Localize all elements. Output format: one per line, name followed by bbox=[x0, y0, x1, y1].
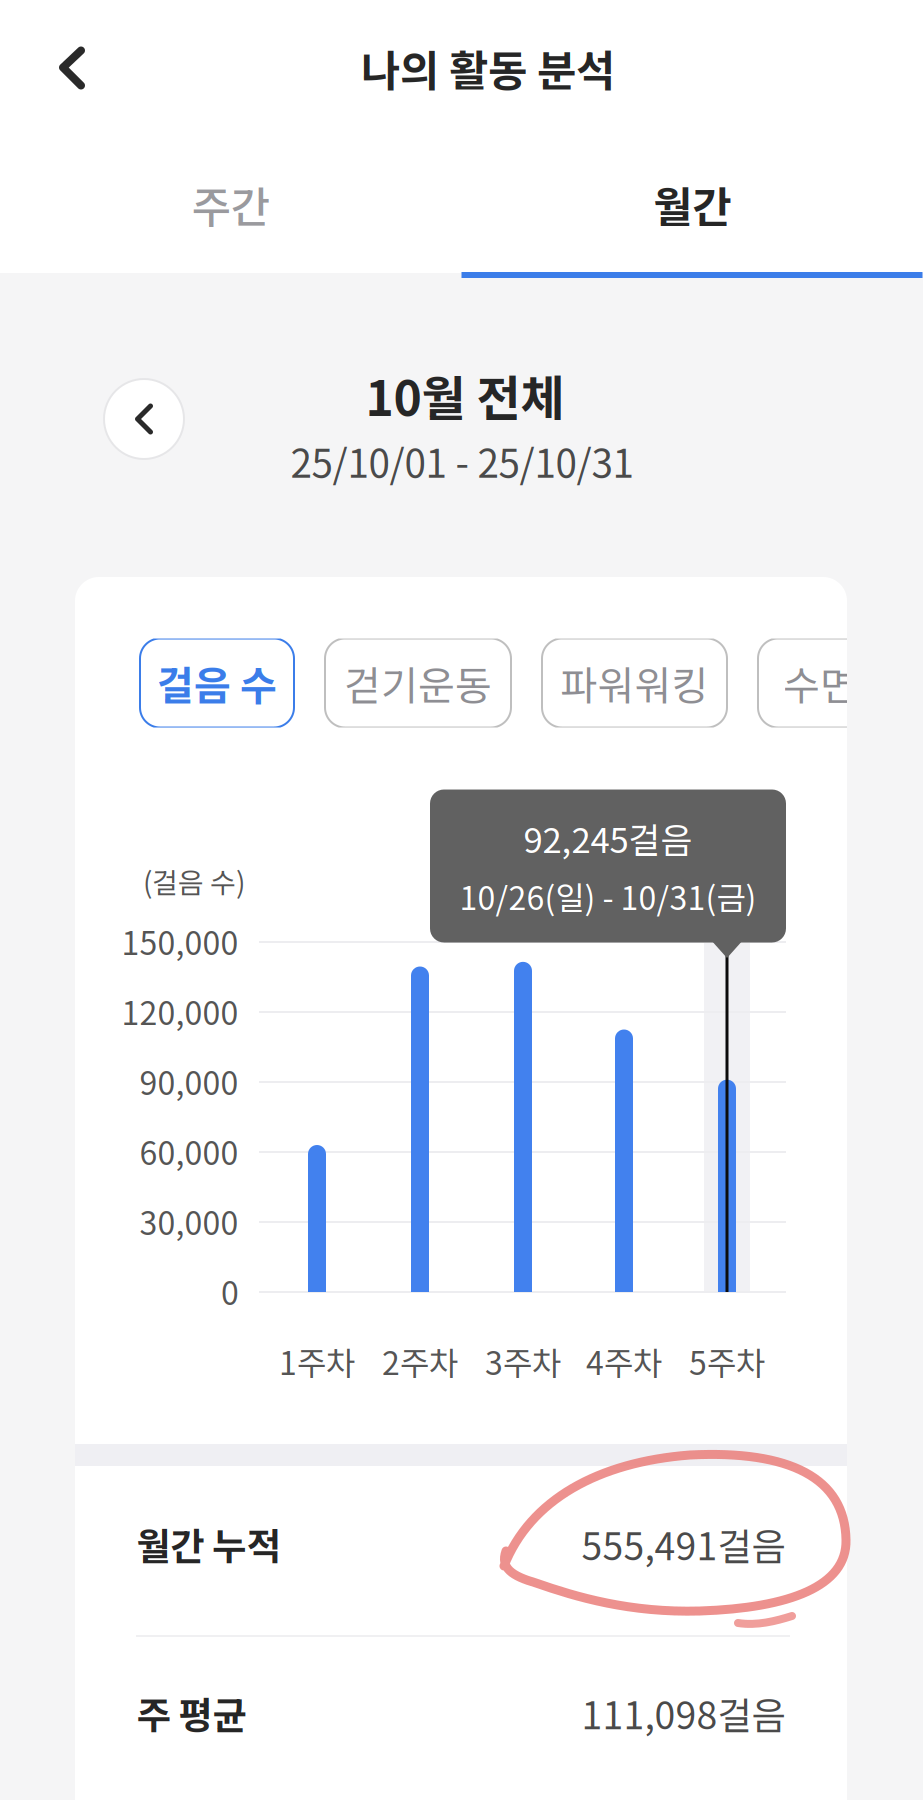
button[interactable]: 수면 bbox=[758, 638, 882, 727]
staticText: 120,000 bbox=[121, 988, 238, 1034]
staticText: 2주차 bbox=[382, 1338, 458, 1384]
staticText: 월간 누적 bbox=[136, 1517, 280, 1571]
staticText: 4주차 bbox=[586, 1338, 662, 1384]
staticText: 나의 활동 분석 bbox=[361, 37, 615, 99]
button[interactable]: 걷기운동 bbox=[325, 638, 511, 727]
button[interactable]: Previous month bbox=[104, 379, 184, 459]
staticText: 걸음 수 bbox=[157, 654, 277, 712]
staticText: 0 bbox=[221, 1268, 239, 1314]
staticText: 1주차 bbox=[279, 1338, 355, 1384]
staticText: 90,000 bbox=[139, 1058, 238, 1104]
staticText: 10/26(일) - 10/31(금) bbox=[459, 873, 756, 919]
staticText: 30,000 bbox=[139, 1198, 238, 1244]
staticText: 92,245걸음 bbox=[523, 813, 692, 863]
button[interactable]: 걸음 수 bbox=[140, 638, 294, 727]
button[interactable]: 월간 bbox=[461, 136, 923, 273]
button[interactable]: 주 평균 bbox=[136, 1670, 785, 1756]
staticText: 주간 bbox=[192, 174, 270, 235]
staticText: 5주차 bbox=[689, 1338, 765, 1384]
staticText: 월간 bbox=[653, 174, 731, 235]
staticText: 3주차 bbox=[485, 1338, 561, 1384]
staticText: 파워워킹 bbox=[560, 654, 708, 712]
button[interactable]: Back bbox=[0, 0, 144, 136]
staticText: 555,491걸음 bbox=[581, 1517, 785, 1571]
staticText: 10월 전체 bbox=[365, 360, 564, 430]
button[interactable]: 주간 bbox=[0, 136, 461, 273]
staticText: 걷기운동 bbox=[344, 654, 492, 712]
button[interactable]: 파워워킹 bbox=[542, 638, 727, 727]
button[interactable]: 월간 누적 bbox=[136, 1501, 785, 1587]
staticText: 25/10/01 - 25/10/31 bbox=[290, 433, 633, 489]
staticText: (걸음 수) bbox=[143, 861, 245, 901]
staticText: 150,000 bbox=[121, 918, 238, 964]
staticText: 주 평균 bbox=[136, 1686, 246, 1740]
staticText: 수면 bbox=[783, 654, 857, 712]
staticText: 111,098걸음 bbox=[581, 1686, 785, 1740]
staticText: 60,000 bbox=[139, 1128, 238, 1174]
